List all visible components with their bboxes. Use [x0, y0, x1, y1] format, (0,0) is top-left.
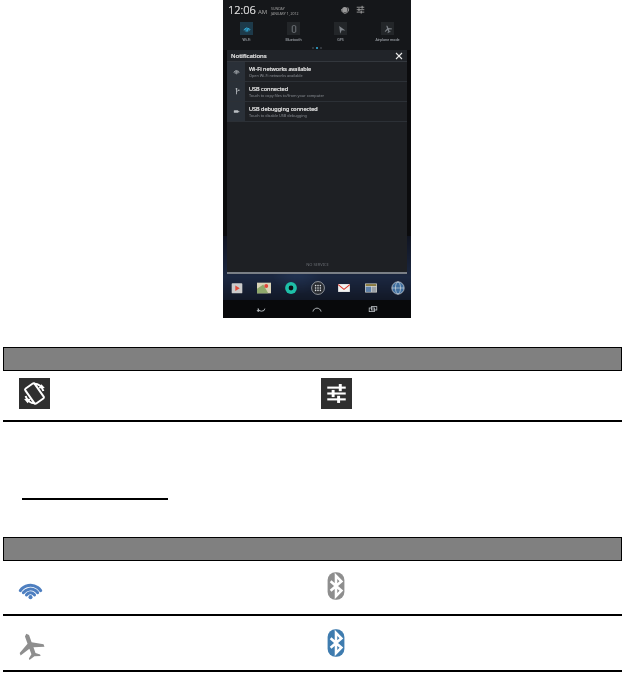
button[interactable]: Wi-Fi networks available	[227, 62, 407, 81]
button[interactable]: Browser	[389, 279, 406, 296]
button[interactable]: GPS	[317, 18, 364, 45]
button[interactable]: Notifications	[231, 50, 403, 61]
staticText: Touch to copy files to/from your compute…	[249, 93, 325, 98]
staticText: USB debugging connected	[249, 105, 318, 112]
button[interactable]: Maps	[255, 279, 272, 296]
button[interactable]: Wi-Fi	[223, 18, 270, 45]
button[interactable]: Gmail	[335, 279, 352, 296]
button[interactable]: Bluetooth	[270, 18, 317, 45]
staticText: USB connected	[249, 85, 289, 92]
button[interactable]: Recents	[365, 301, 381, 317]
button[interactable]: Back	[253, 301, 269, 317]
button[interactable]: Auto-rotate screen	[19, 378, 50, 409]
button[interactable]: Wi-Fi connected	[14, 572, 46, 604]
staticText: 12:06	[228, 2, 256, 17]
button[interactable]: Bluetooth on	[319, 626, 353, 660]
button[interactable]: Music	[282, 279, 299, 296]
button[interactable]: Play Store	[228, 279, 245, 296]
button[interactable]: Bluetooth off	[319, 569, 353, 603]
staticText: Wi-Fi networks available	[249, 65, 312, 72]
button[interactable]: Airplane mode	[14, 629, 46, 661]
button[interactable]: Airplane mode	[364, 18, 411, 45]
staticText: Wi-Fi	[242, 37, 251, 42]
button[interactable]: USB debugging connected	[227, 102, 407, 121]
staticText: Bluetooth	[285, 37, 302, 42]
button[interactable]: Display settings	[321, 378, 352, 409]
button[interactable]: Apps	[309, 279, 326, 296]
button[interactable]: Gallery	[362, 279, 379, 296]
button[interactable]: Home	[309, 301, 325, 317]
staticText: SUNDAY	[271, 6, 285, 11]
staticText: JANUARY 1, 2012	[271, 11, 299, 16]
staticText: Airplane mode	[375, 37, 400, 42]
staticText: GPS	[337, 37, 344, 42]
button[interactable]: Clear notifications	[394, 51, 403, 60]
staticText: Touch to disable USB debugging	[249, 113, 307, 118]
staticText: AM	[258, 8, 268, 16]
staticText: NO SERVICE	[306, 262, 329, 267]
staticText: Notifications	[231, 52, 267, 60]
button[interactable]: USB connected	[227, 82, 407, 101]
staticText: Open Wi-Fi networks available	[249, 73, 303, 78]
